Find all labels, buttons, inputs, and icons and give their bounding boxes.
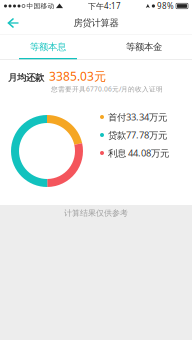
staticText: 贷款77.78万元 bbox=[108, 129, 167, 141]
button[interactable]: 等额本息 bbox=[0, 34, 96, 59]
staticText: 3385.03元 bbox=[49, 68, 106, 84]
staticText: 首付33.34万元 bbox=[108, 111, 167, 123]
staticText: 等额本息 bbox=[30, 41, 66, 53]
staticText: 月均还款 bbox=[8, 72, 44, 83]
staticText: 等额本金 bbox=[126, 41, 162, 53]
staticText: 利息 44.08万元 bbox=[108, 147, 169, 159]
staticText: 房贷计算器 bbox=[73, 17, 118, 29]
staticText: 您需要开具6770.06元/月的收入证明 bbox=[51, 85, 163, 93]
button[interactable]: Back bbox=[0, 12, 26, 34]
staticText: 中国移动 bbox=[26, 2, 54, 10]
staticText: 98% bbox=[157, 1, 174, 11]
staticText: 计算结果仅供参考 bbox=[64, 208, 128, 218]
button[interactable]: 等额本金 bbox=[96, 34, 192, 59]
staticText: 下午4:17 bbox=[88, 1, 121, 11]
